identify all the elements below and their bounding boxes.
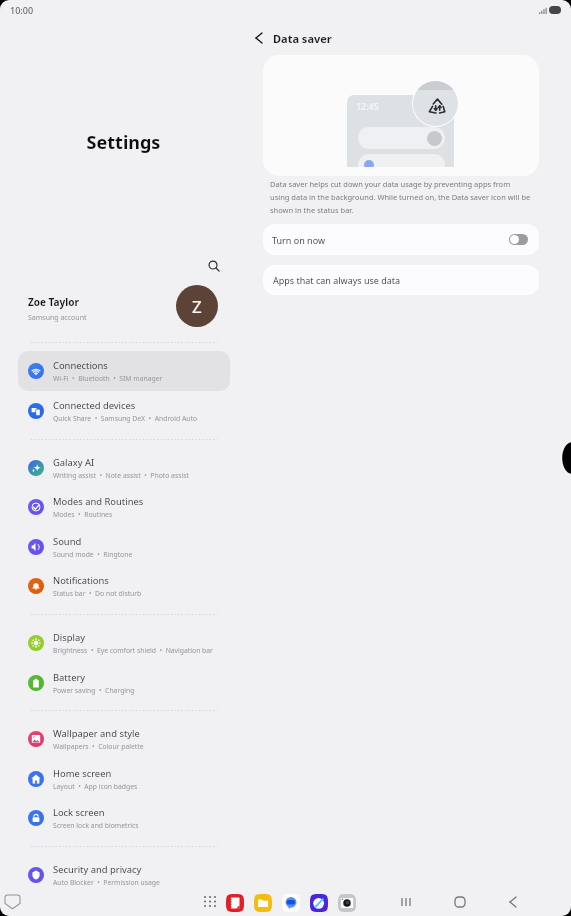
staticText: Notifications bbox=[53, 574, 109, 587]
staticText: Layout • App icon badges bbox=[53, 782, 138, 791]
staticText: Auto Blocker • Permission usage bbox=[53, 878, 160, 887]
button[interactable]: Notifications bbox=[18, 566, 230, 606]
button[interactable]: Recents bbox=[397, 893, 415, 911]
button[interactable]: messages bbox=[282, 894, 300, 912]
staticText: Wallpapers • Colour palette bbox=[53, 742, 144, 751]
staticText: 12:45 bbox=[356, 100, 379, 112]
button[interactable]: note bbox=[226, 894, 244, 912]
button[interactable]: Security and privacy bbox=[18, 855, 230, 895]
button[interactable]: Connected devices bbox=[18, 391, 230, 431]
staticText: Modes • Routines bbox=[53, 510, 113, 519]
staticText: Data saver bbox=[273, 31, 332, 46]
button[interactable]: Home screen bbox=[18, 759, 230, 799]
staticText: Data saver helps cut down your data usag… bbox=[270, 179, 542, 215]
staticText: Turn on now bbox=[272, 234, 509, 246]
button[interactable]: Edge panel bbox=[561, 441, 571, 475]
button[interactable]: Connections bbox=[18, 351, 230, 391]
staticText: Quick Share • Samsung DeX • Android Auto bbox=[53, 414, 198, 423]
button[interactable]: Wallpaper and style bbox=[18, 719, 230, 759]
staticText: Modes and Routines bbox=[53, 495, 144, 508]
staticText: Samsung account bbox=[28, 313, 87, 323]
staticText: Connections bbox=[53, 359, 108, 372]
button[interactable]: Home bbox=[451, 893, 469, 911]
staticText: Home screen bbox=[53, 767, 112, 780]
button[interactable]: Display bbox=[18, 623, 230, 663]
staticText: Wi-Fi • Bluetooth • SIM manager bbox=[53, 374, 163, 383]
button[interactable]: Galaxy AI bbox=[18, 448, 230, 488]
button[interactable]: Lock screen bbox=[18, 798, 230, 838]
button[interactable]: Modes and Routines bbox=[18, 487, 230, 527]
staticText: Settings bbox=[0, 130, 247, 155]
button[interactable]: Search bbox=[203, 255, 224, 276]
button[interactable]: internet bbox=[310, 894, 328, 912]
button[interactable]: camera bbox=[338, 894, 356, 912]
staticText: Sound bbox=[53, 535, 82, 548]
staticText: Security and privacy bbox=[53, 863, 142, 876]
staticText: Lock screen bbox=[53, 806, 105, 819]
button[interactable]: Back bbox=[248, 27, 270, 49]
button[interactable]: files bbox=[254, 894, 272, 912]
staticText: 10:00 bbox=[10, 4, 34, 16]
staticText: Screen lock and biometrics bbox=[53, 821, 139, 830]
button[interactable]: All apps bbox=[205, 897, 215, 906]
staticText: Apps that can always use data bbox=[273, 274, 401, 286]
button[interactable]: Back bbox=[504, 893, 522, 911]
staticText: Sound mode • Ringtone bbox=[53, 550, 133, 559]
staticText: Display bbox=[53, 631, 86, 644]
staticText: Power saving • Charging bbox=[53, 686, 135, 695]
button[interactable]: Turn on now bbox=[263, 224, 539, 255]
staticText: Zoe Taylor bbox=[28, 295, 79, 309]
button[interactable]: Apps that can always use data bbox=[263, 265, 539, 295]
staticText: Battery bbox=[53, 671, 86, 684]
button[interactable]: Zoe Taylor bbox=[0, 287, 248, 330]
staticText: Brightness • Eye comfort shield • Naviga… bbox=[53, 646, 213, 655]
staticText: Z bbox=[192, 295, 202, 318]
staticText: Connected devices bbox=[53, 399, 136, 412]
staticText: Galaxy AI bbox=[53, 456, 95, 469]
staticText: Wallpaper and style bbox=[53, 727, 140, 740]
button[interactable]: Sound bbox=[18, 527, 230, 567]
staticText: Status bar • Do not disturb bbox=[53, 589, 142, 598]
button[interactable]: Battery bbox=[18, 663, 230, 703]
button[interactable]: Show taskbar bbox=[5, 895, 20, 910]
staticText: Writing assist • Note assist • Photo ass… bbox=[53, 471, 189, 480]
